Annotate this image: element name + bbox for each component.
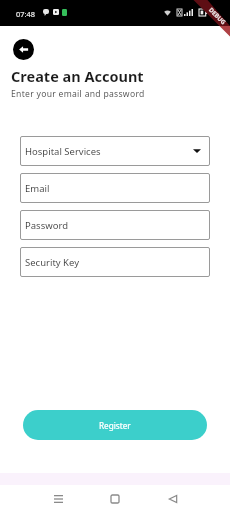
staticText: Email: [25, 182, 50, 195]
staticText: Register: [99, 420, 131, 431]
staticText: Enter your email and password: [11, 88, 145, 100]
staticText: Create an Account: [11, 66, 144, 86]
button[interactable]: Register: [23, 410, 207, 440]
staticText: DEBUG: [207, 6, 228, 27]
button[interactable]: Home: [102, 485, 128, 512]
button[interactable]: Recent apps: [45, 485, 71, 512]
staticText: Hospital Services: [25, 145, 101, 158]
button[interactable]: Password: [20, 210, 210, 240]
button[interactable]: Email: [20, 173, 210, 203]
staticText: Password: [25, 219, 68, 232]
button[interactable]: Hospital Services: [20, 136, 210, 166]
button[interactable]: Security Key: [20, 247, 210, 277]
staticText: 07:48: [16, 9, 35, 19]
button[interactable]: Back: [160, 485, 186, 512]
button[interactable]: Back: [13, 39, 34, 60]
staticText: Security Key: [25, 256, 80, 269]
